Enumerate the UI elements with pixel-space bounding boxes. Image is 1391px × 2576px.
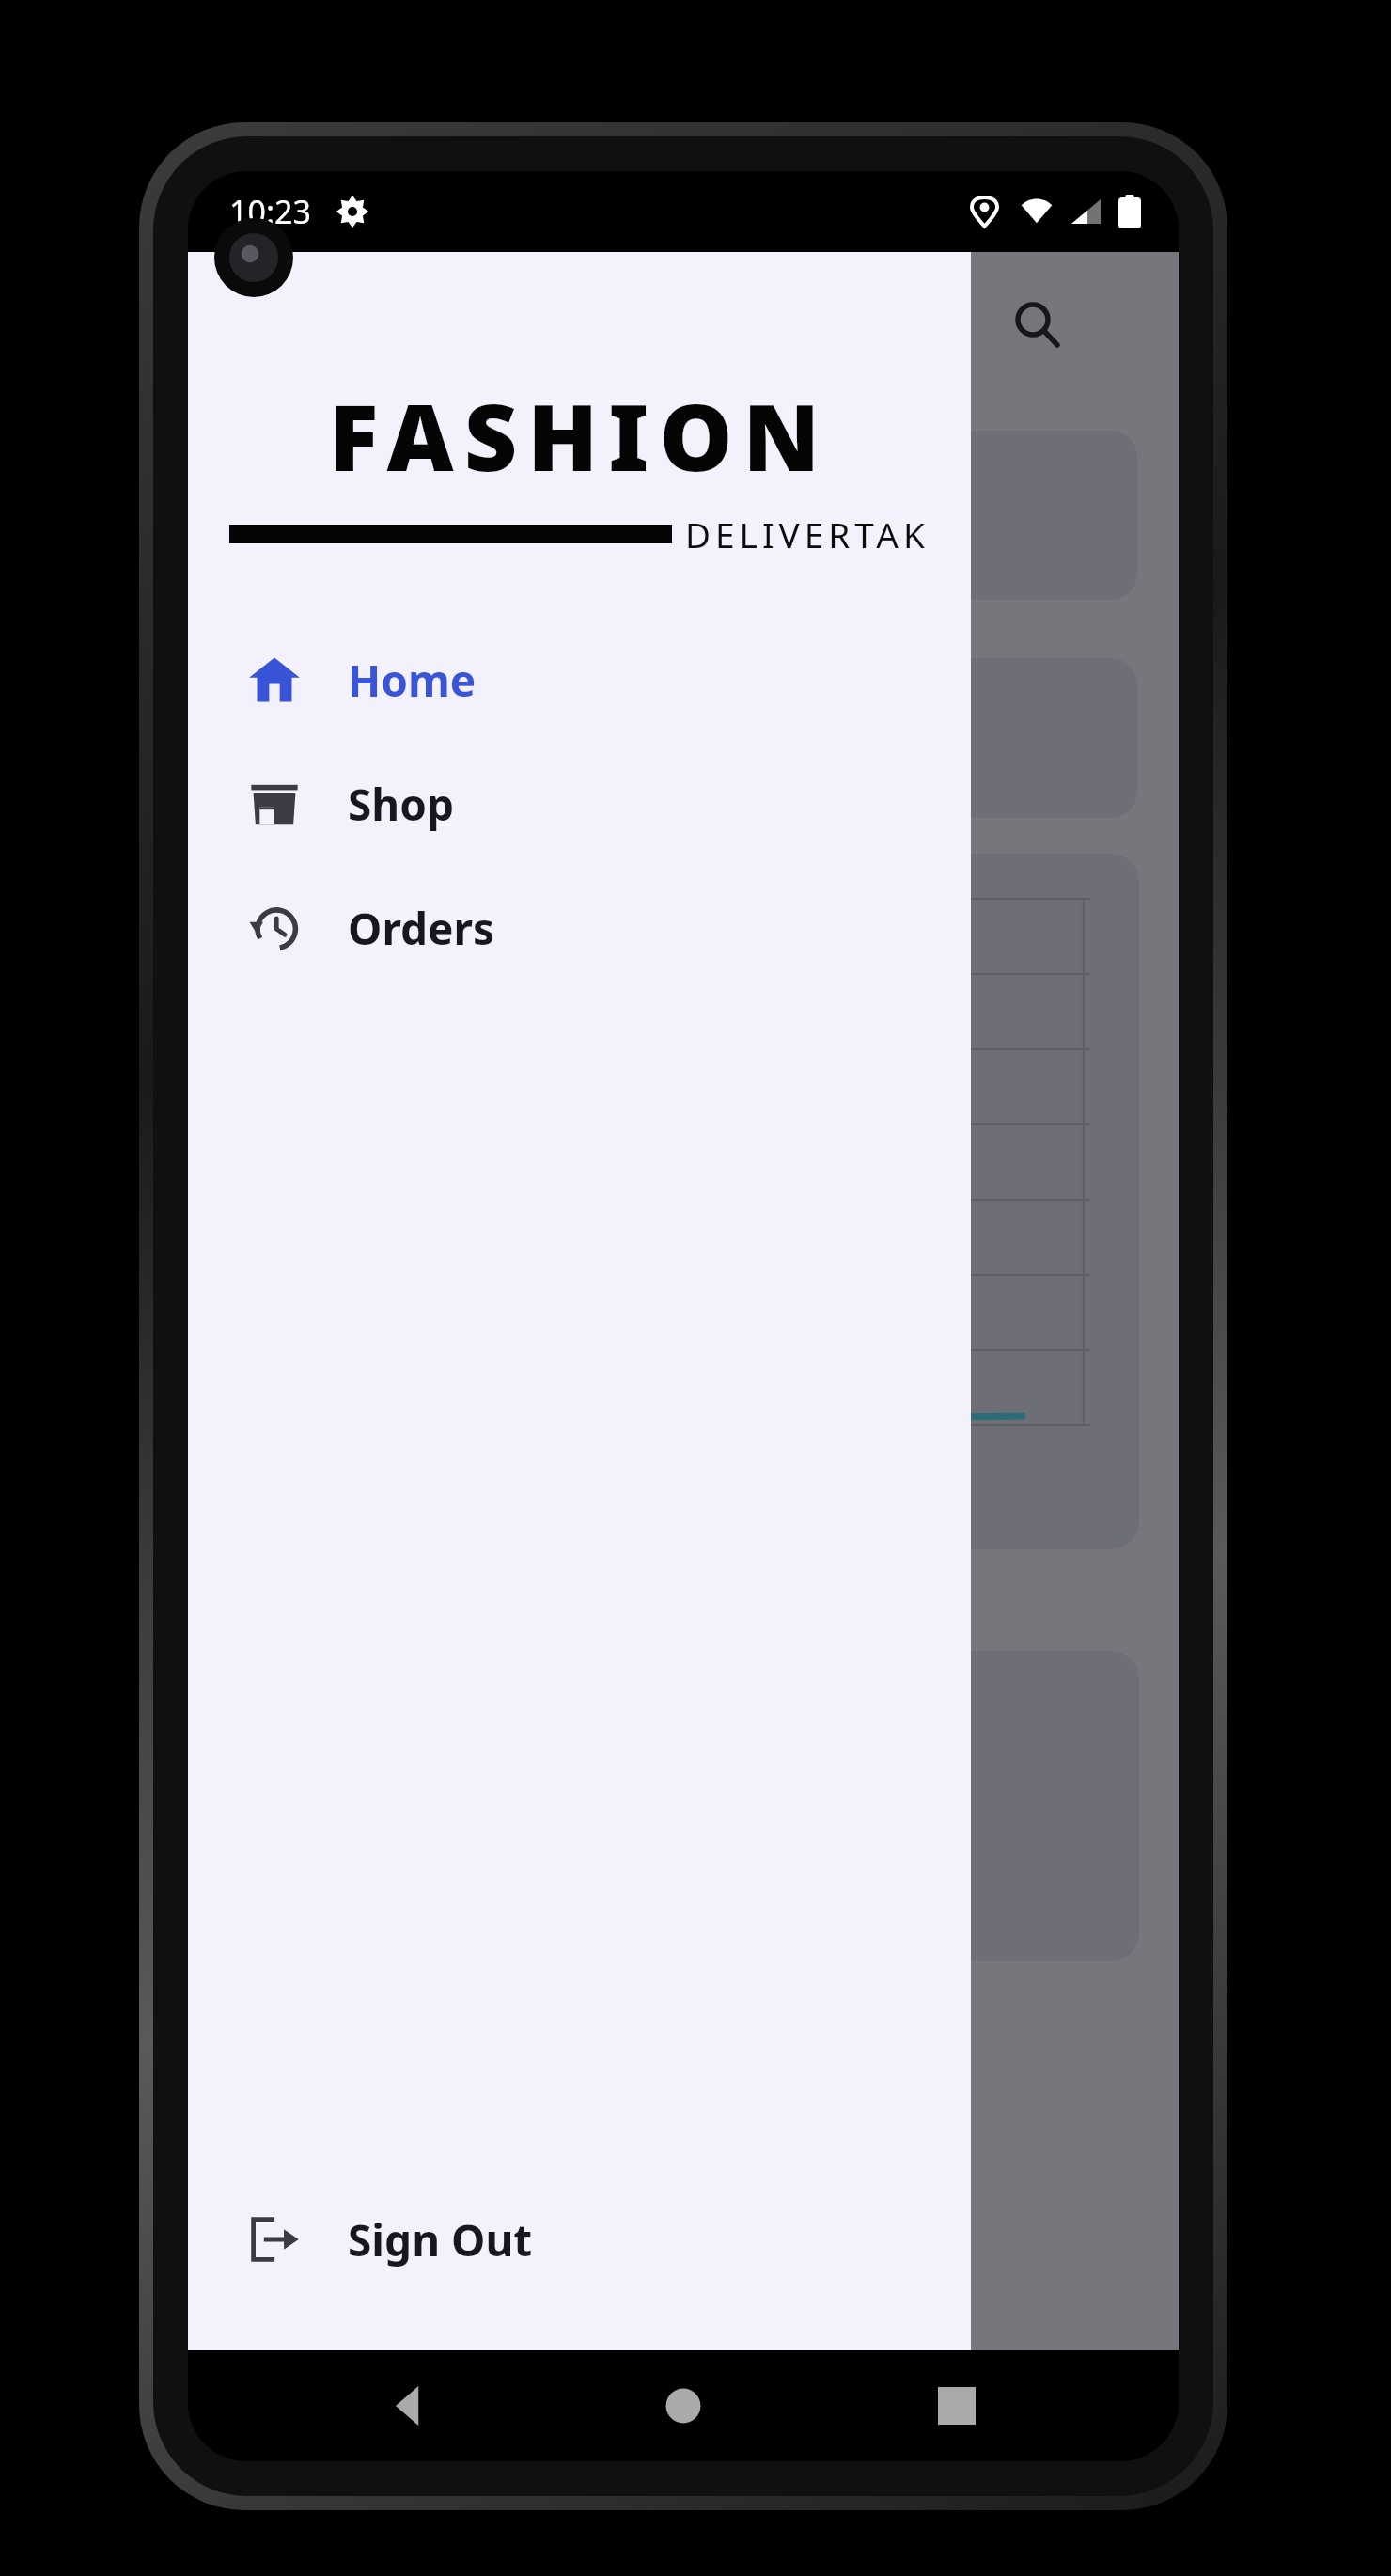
button[interactable]: ers: [789, 658, 1137, 818]
button[interactable]: Shop: [188, 759, 971, 849]
staticText: 10:23: [229, 190, 311, 233]
staticText: Shop: [348, 775, 455, 834]
button[interactable]: Orders: [188, 883, 971, 973]
staticText: lling: [806, 466, 884, 515]
button[interactable]: Back: [358, 2354, 461, 2458]
button[interactable]: [771, 1651, 1139, 1961]
button[interactable]: Nov: [752, 854, 1139, 1549]
button[interactable]: Sign Out: [188, 2194, 971, 2285]
staticText: DELIVERTAK: [685, 510, 930, 558]
button[interactable]: Home: [188, 635, 971, 725]
staticText: FASHION: [229, 372, 930, 497]
button[interactable]: Recent apps: [905, 2354, 1008, 2458]
button[interactable]: lling: [789, 431, 1137, 600]
button[interactable]: Home: [632, 2354, 735, 2458]
staticText: Home: [348, 651, 477, 710]
button[interactable]: Search: [998, 286, 1077, 365]
staticText: Sign Out: [348, 2210, 533, 2270]
staticText: 9.2: [806, 521, 860, 572]
staticText: Orders: [348, 899, 495, 958]
